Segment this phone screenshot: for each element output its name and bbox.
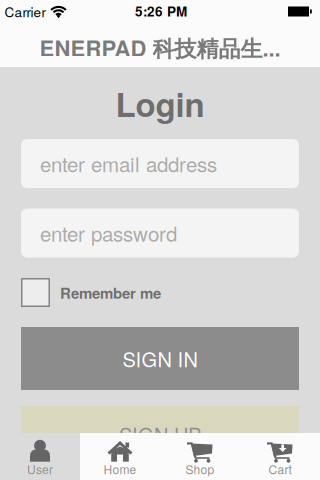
staticText: Login bbox=[115, 80, 204, 127]
button[interactable]: User bbox=[0, 433, 80, 480]
button[interactable]: enter email address bbox=[21, 139, 299, 188]
button[interactable]: SIGN UP bbox=[21, 406, 299, 469]
button[interactable]: Shop bbox=[160, 433, 240, 480]
button[interactable]: enter password bbox=[21, 208, 299, 257]
button[interactable]: Home bbox=[80, 433, 160, 480]
staticText: Cart bbox=[268, 460, 291, 478]
staticText: ENERPAD 科技精品生... bbox=[39, 32, 280, 63]
staticText: Shop bbox=[185, 460, 214, 478]
staticText: SIGN IN bbox=[122, 344, 197, 373]
staticText: 5:26 PM bbox=[135, 1, 187, 21]
staticText: enter password bbox=[40, 218, 177, 248]
staticText: Carrier bbox=[4, 2, 45, 21]
staticText: Home bbox=[103, 460, 136, 478]
staticText: enter email address bbox=[40, 149, 217, 178]
button[interactable]: Cart bbox=[240, 433, 320, 480]
button[interactable]: Remember me bbox=[21, 278, 300, 307]
staticText: User bbox=[27, 460, 53, 478]
button[interactable]: SIGN IN bbox=[21, 327, 299, 390]
staticText: SIGN UP bbox=[119, 420, 201, 448]
staticText: Remember me bbox=[60, 282, 161, 303]
